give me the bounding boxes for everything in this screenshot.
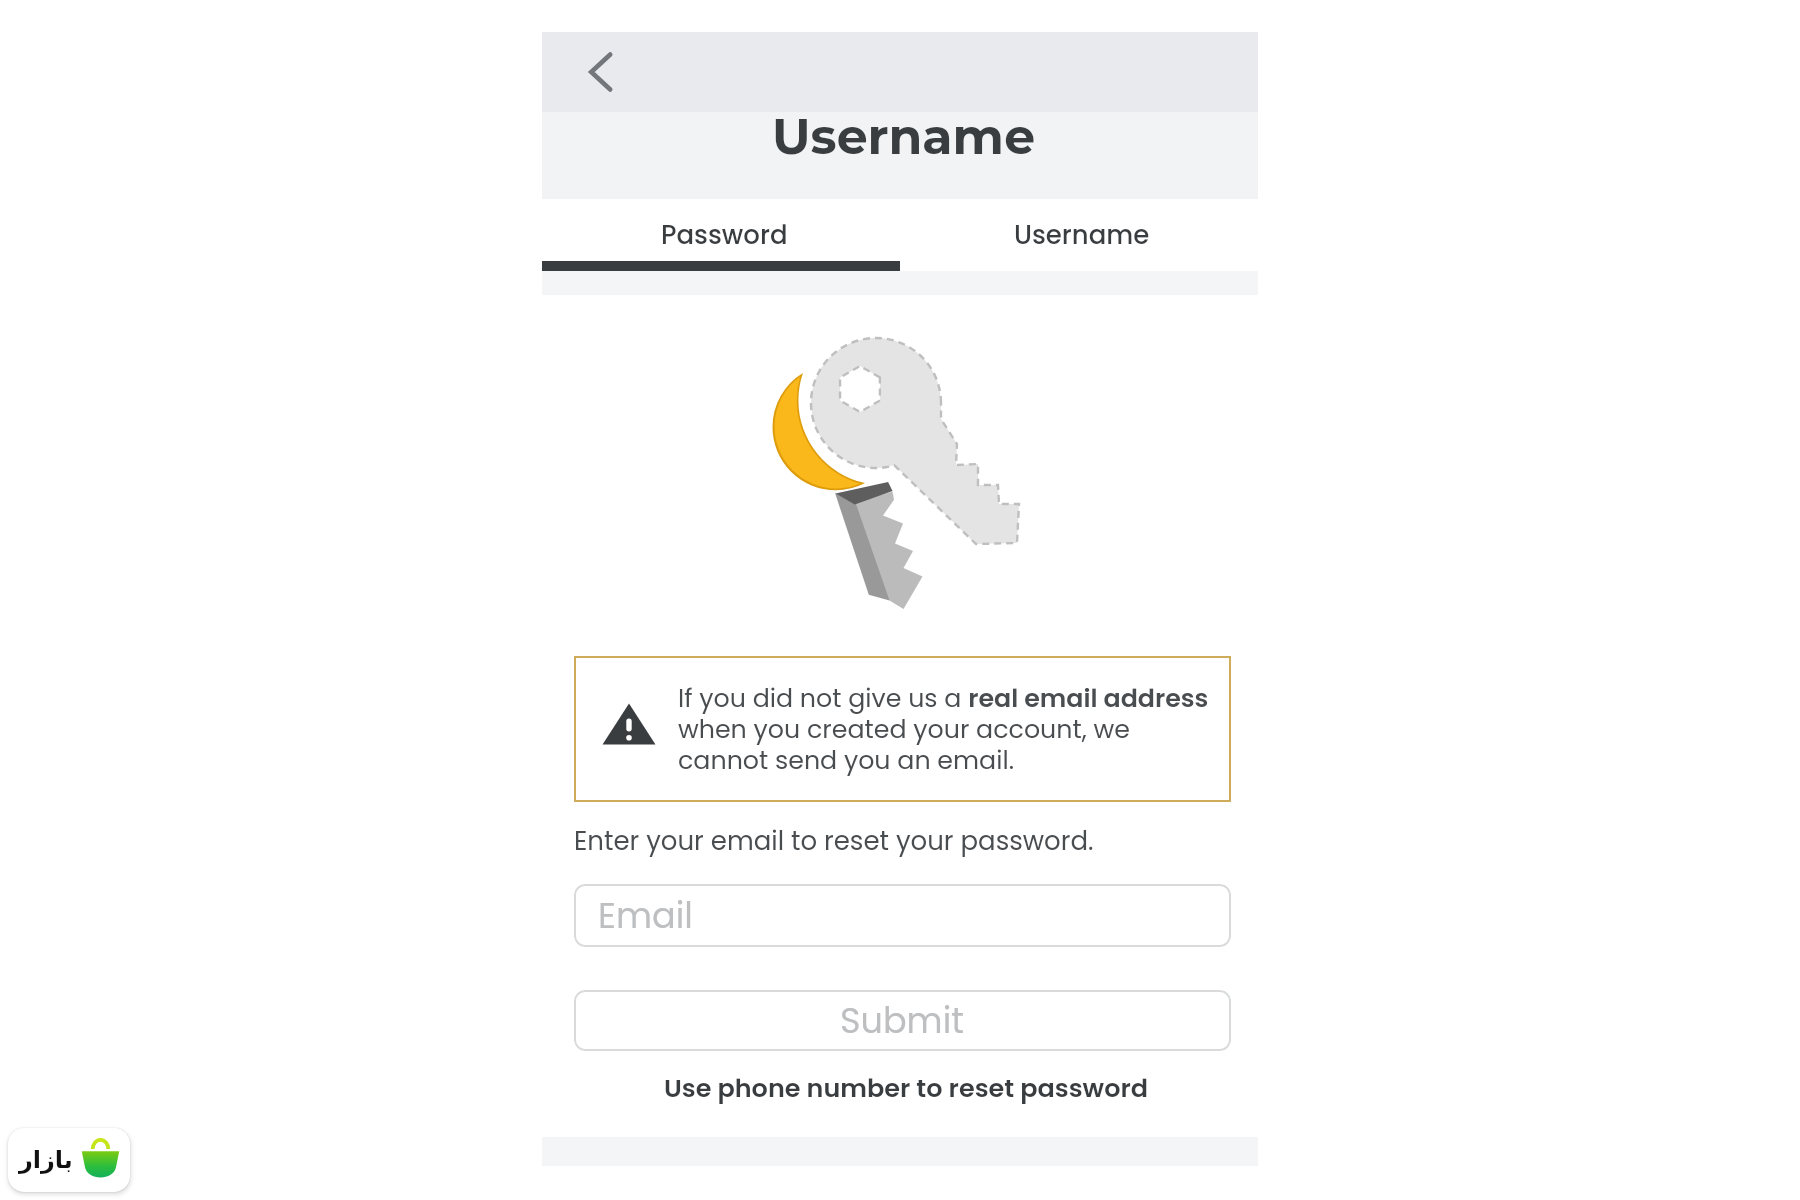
button[interactable]: Submit [574, 990, 1231, 1051]
staticText: Username [772, 107, 1036, 167]
button[interactable]: Back [570, 43, 628, 101]
button[interactable]: Username [900, 199, 1258, 261]
staticText: Username [1014, 217, 1150, 253]
button[interactable]: Password [542, 199, 900, 261]
staticText: Enter your email to reset your password. [574, 823, 1094, 859]
staticText: بازار [19, 1146, 73, 1174]
button[interactable]: Bazaar [8, 1128, 130, 1192]
staticText: Password [661, 217, 788, 253]
button[interactable]: Email [574, 884, 1231, 947]
staticText: Email [598, 891, 693, 940]
staticText: If you did not give us a real email addr… [678, 680, 1210, 778]
button[interactable]: Use phone number to reset password [650, 1073, 1150, 1117]
staticText: Submit [840, 996, 965, 1045]
